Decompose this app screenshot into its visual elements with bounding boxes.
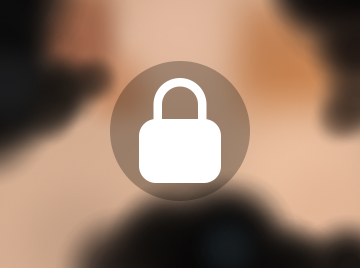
button[interactable]: Locked content [0,0,360,268]
